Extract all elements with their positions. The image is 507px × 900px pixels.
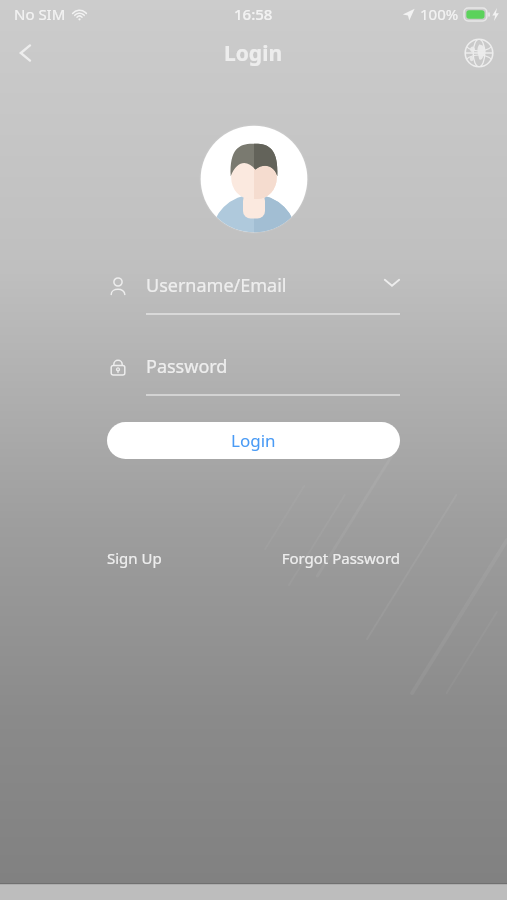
staticText: Forgot Password bbox=[281, 548, 400, 568]
button[interactable]: Login bbox=[107, 422, 400, 459]
staticText: Login bbox=[231, 429, 276, 452]
staticText: Username/Email bbox=[146, 273, 384, 298]
button[interactable]: Back bbox=[4, 31, 48, 75]
button[interactable]: Username/Email bbox=[107, 269, 400, 315]
staticText: 100% bbox=[420, 4, 459, 24]
staticText: Password bbox=[146, 354, 400, 379]
button[interactable]: Forgot Password bbox=[281, 548, 400, 568]
button[interactable]: Sign Up bbox=[107, 548, 162, 568]
staticText: Login bbox=[224, 39, 283, 68]
staticText: No SIM bbox=[14, 4, 66, 24]
button[interactable]: Language bbox=[457, 31, 501, 75]
staticText: Sign Up bbox=[107, 548, 162, 568]
staticText: 16:58 bbox=[234, 4, 273, 24]
button[interactable]: Password bbox=[107, 350, 400, 396]
